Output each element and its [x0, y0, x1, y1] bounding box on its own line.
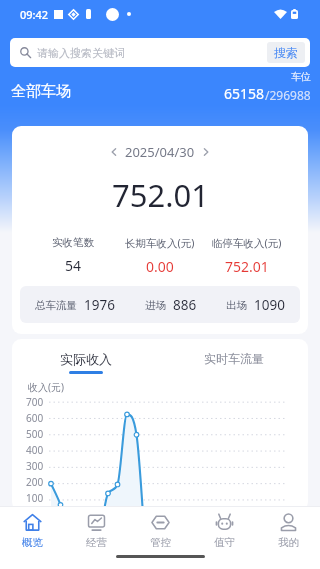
button[interactable]: Next day [199, 145, 213, 159]
button[interactable]: Previous day [107, 145, 121, 159]
staticText: 1976 [84, 296, 115, 314]
staticText: 54 [65, 256, 82, 275]
staticText: 进场 [145, 299, 166, 312]
staticText: 886 [173, 296, 197, 314]
button[interactable]: 管控 [128, 513, 192, 547]
staticText: 100 [26, 491, 44, 505]
staticText: 300 [26, 459, 44, 473]
staticText: 出场 [226, 299, 247, 312]
button[interactable]: 实际收入 [12, 351, 160, 374]
staticText: 500 [26, 427, 44, 441]
button[interactable]: 请输入搜索关键词 [10, 38, 310, 67]
staticText: 概览 [22, 536, 43, 547]
button[interactable]: 实时车流量 [160, 351, 308, 366]
button[interactable]: 搜索 [267, 42, 305, 63]
staticText: 600 [26, 411, 44, 425]
button[interactable]: 概览 [0, 513, 64, 547]
staticText: 临停车收入(元) [212, 236, 282, 250]
staticText: 经营 [86, 536, 107, 547]
staticText: 总车流量 [35, 299, 77, 312]
staticText: 0.00 [146, 257, 174, 276]
button[interactable]: 经营 [64, 513, 128, 547]
staticText: 实际收入 [60, 351, 112, 367]
staticText: 200 [26, 475, 44, 489]
staticText: 请输入搜索关键词 [37, 46, 125, 60]
staticText: 700 [26, 395, 44, 409]
staticText: 搜索 [274, 45, 298, 60]
staticText: 收入(元) [28, 380, 64, 394]
staticText: /296988 [265, 87, 311, 103]
staticText: 400 [26, 443, 44, 457]
staticText: 752.01 [225, 257, 269, 276]
staticText: 长期车收入(元) [125, 236, 195, 250]
staticText: 管控 [150, 536, 171, 547]
button[interactable]: 值守 [192, 513, 256, 547]
button[interactable]: 我的 [256, 513, 320, 547]
staticText: 实收笔数 [52, 236, 94, 249]
staticText: 752.01 [112, 174, 209, 216]
staticText: 实时车流量 [204, 351, 264, 366]
staticText: 值守 [214, 536, 235, 547]
staticText: 65158 [224, 84, 265, 103]
staticText: 09:42 [20, 7, 49, 22]
staticText: 车位 [291, 70, 311, 83]
staticText: 1090 [254, 296, 285, 314]
staticText: 我的 [278, 536, 299, 547]
staticText: 2025/04/30 [125, 143, 195, 161]
button[interactable]: 全部车场 [11, 82, 71, 107]
